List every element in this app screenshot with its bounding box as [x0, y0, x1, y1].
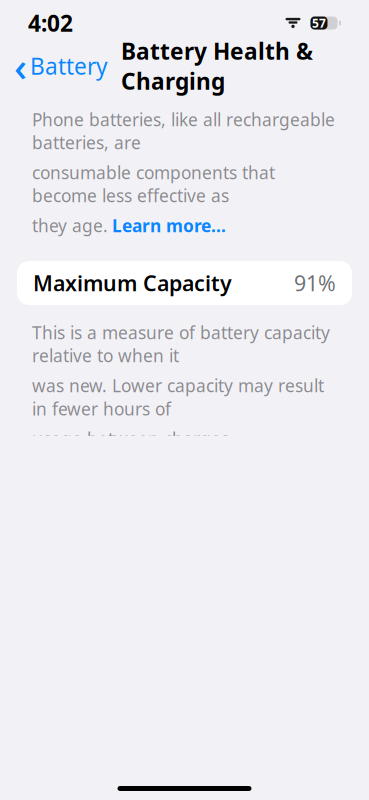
- staticText: was new. Lower capacity may result in fe…: [32, 374, 324, 420]
- staticText: usage between charges.: [32, 427, 234, 450]
- staticText: Battery: [30, 51, 108, 81]
- staticText: 91%: [294, 269, 336, 297]
- button[interactable]: Learn more...: [112, 214, 226, 237]
- staticText: they age.: [32, 214, 108, 237]
- staticText: ‹: [14, 39, 27, 92]
- staticText: 57: [312, 15, 326, 31]
- staticText: Maximum Capacity: [33, 269, 232, 297]
- staticText: 4:02: [28, 8, 73, 38]
- staticText: Battery Health & Charging: [121, 36, 313, 96]
- staticText: To reduce battery ageing, iPhone learns …: [32, 770, 304, 800]
- staticText: Learn more...: [112, 214, 226, 237]
- staticText: consumable components that become less e…: [32, 161, 275, 207]
- staticText: This is a measure of battery capacity re…: [32, 321, 330, 367]
- button[interactable]: ‹: [10, 35, 112, 96]
- staticText: Phone batteries, like all rechargeable b…: [32, 108, 335, 154]
